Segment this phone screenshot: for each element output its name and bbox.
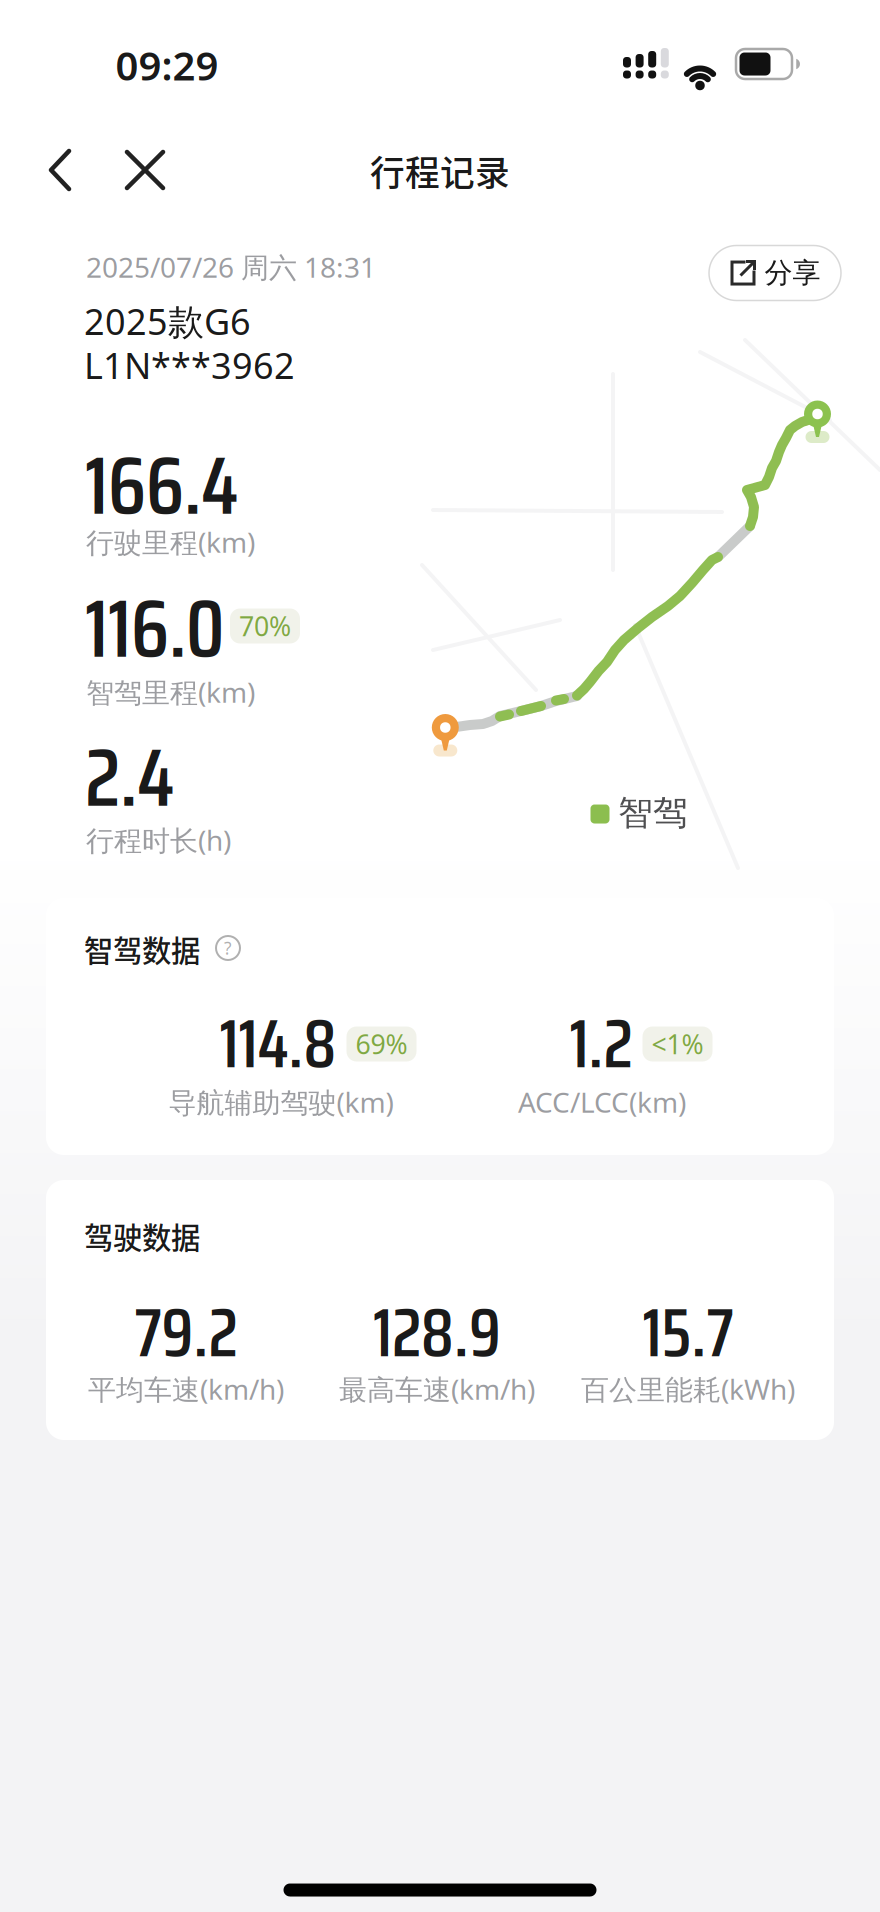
staticText: 128.9 <box>373 1280 501 1385</box>
button[interactable]: Close <box>120 145 170 195</box>
staticText: 最高车速(km/h) <box>339 1370 535 1408</box>
staticText: 15.7 <box>642 1280 733 1385</box>
staticText: 116.0 <box>85 566 224 692</box>
staticText: 79.2 <box>134 1280 237 1385</box>
staticText: 70% <box>239 608 291 644</box>
staticText: 智驾里程(km) <box>86 673 255 711</box>
staticText: 行程时长(h) <box>86 821 231 859</box>
staticText: L1N***3962 <box>84 341 295 389</box>
staticText: 2.4 <box>85 715 175 841</box>
staticText: 驾驶数据 <box>84 1215 200 1257</box>
staticText: ACC/LCC(km) <box>518 1083 686 1121</box>
staticText: 平均车速(km/h) <box>88 1370 284 1408</box>
staticText: 114.8 <box>219 991 336 1096</box>
staticText: 69% <box>355 1026 407 1062</box>
staticText: 导航辅助驾驶(km) <box>168 1083 393 1121</box>
staticText: 行驶里程(km) <box>86 523 255 561</box>
staticText: ? <box>224 936 232 959</box>
staticText: 行程记录 <box>370 146 510 196</box>
button[interactable]: Back <box>43 145 93 195</box>
staticText: <1% <box>651 1026 703 1062</box>
staticText: 2025款G6 <box>84 297 251 345</box>
staticText: 分享 <box>764 256 820 290</box>
staticText: 2025/07/26 周六 18:31 <box>86 248 376 286</box>
staticText: 智驾 <box>618 792 688 834</box>
staticText: 166.4 <box>85 423 239 549</box>
staticText: 百公里能耗(kWh) <box>581 1370 795 1408</box>
button[interactable]: 分享 <box>709 245 841 300</box>
staticText: 1.2 <box>569 991 632 1096</box>
button[interactable]: Help <box>213 933 243 963</box>
staticText: 09:29 <box>115 38 218 91</box>
staticText: 智驾数据 <box>84 928 200 970</box>
